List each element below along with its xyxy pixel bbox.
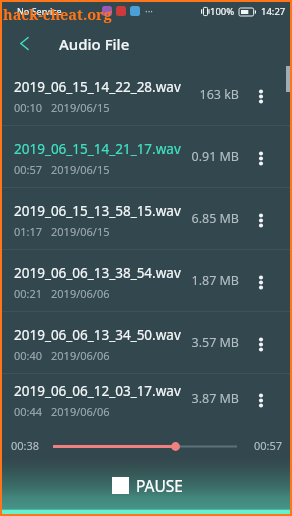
staticText: 2019_06_15_14_22_28.wav <box>14 78 181 96</box>
staticText: 2019_06_06_12_03_17.wav <box>14 382 181 400</box>
button[interactable]: 2019_06_06_13_34_50.wav <box>2 312 290 373</box>
staticText: 2019/06/15 <box>51 224 110 239</box>
staticText: 2019_06_15_14_21_17.wav <box>14 140 181 158</box>
staticText: 00:57 <box>14 162 43 177</box>
button[interactable]: More options <box>249 145 273 169</box>
button[interactable]: 2019_06_06_13_38_54.wav <box>2 250 290 311</box>
staticText: 1.87 MB <box>184 272 239 289</box>
staticText: 2019/06/06 <box>51 286 110 301</box>
staticText: hack-cheat.org <box>3 4 112 24</box>
staticText: PAUSE <box>136 475 183 496</box>
staticText: 2019_06_06_13_34_50.wav <box>14 326 181 344</box>
staticText: 00:21 <box>14 286 43 301</box>
staticText: ··· <box>145 4 154 18</box>
staticText: 2019/06/15 <box>51 100 110 115</box>
staticText: 100% <box>210 5 235 18</box>
staticText: 2019_06_15_13_58_15.wav <box>14 202 181 220</box>
staticText: 00:40 <box>14 348 43 363</box>
button[interactable]: Back <box>10 29 38 57</box>
staticText: 2019/06/06 <box>51 404 110 419</box>
staticText: 3.87 MB <box>184 390 239 407</box>
staticText: 3.57 MB <box>184 334 239 351</box>
button[interactable]: PAUSE <box>112 475 183 496</box>
staticText: 00:10 <box>14 100 43 115</box>
staticText: 6.85 MB <box>184 210 239 227</box>
button[interactable]: More options <box>249 269 273 293</box>
staticText: 2019_06_06_13_38_54.wav <box>14 264 181 282</box>
button[interactable]: 2019_06_06_12_03_17.wav <box>2 374 290 423</box>
staticText: Audio File <box>59 34 130 54</box>
button[interactable]: Seek <box>2 425 290 465</box>
button[interactable]: 2019_06_15_14_22_28.wav <box>2 64 290 125</box>
staticText: 00:44 <box>14 404 43 419</box>
button[interactable]: 2019_06_15_14_21_17.wav <box>2 126 290 187</box>
staticText: 2019/06/06 <box>51 348 110 363</box>
staticText: 163 kB <box>184 86 239 103</box>
button[interactable]: More options <box>249 387 273 411</box>
button[interactable]: 2019_06_15_13_58_15.wav <box>2 188 290 249</box>
staticText: 2019/06/15 <box>51 162 110 177</box>
staticText: 14:27 <box>261 5 286 18</box>
staticText: 00:57 <box>254 438 283 453</box>
staticText: 01:17 <box>14 224 43 239</box>
button[interactable]: More options <box>249 331 273 355</box>
staticText: No Service <box>17 5 62 17</box>
button[interactable]: More options <box>249 83 273 107</box>
staticText: 0.91 MB <box>184 148 239 165</box>
button[interactable]: More options <box>249 207 273 231</box>
staticText: 00:38 <box>11 438 40 453</box>
